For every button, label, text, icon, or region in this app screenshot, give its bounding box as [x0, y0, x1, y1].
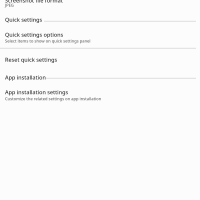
button[interactable]: Quick settings options [0, 30, 200, 48]
button[interactable]: Reset quick settings [0, 48, 200, 66]
button[interactable]: Screenshot file format, JPEG [0, 0, 200, 11]
button[interactable]: App installation settings [0, 86, 200, 104]
